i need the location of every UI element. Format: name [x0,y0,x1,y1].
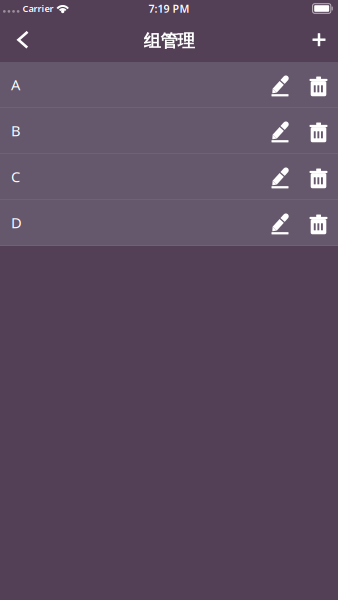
staticText: 7:19 PM [148,1,189,16]
button[interactable]: Delete group A [309,62,328,107]
button[interactable]: Add group [300,20,338,62]
staticText: Carrier [22,2,53,15]
button[interactable]: Delete group D [309,200,328,245]
button[interactable]: Delete group B [309,108,328,153]
staticText: A [11,75,20,94]
button[interactable]: Edit group A [270,62,291,107]
button[interactable]: Edit group C [270,154,291,199]
staticText: B [11,121,21,140]
button[interactable]: Edit group D [270,200,291,245]
button[interactable]: Edit group B [270,108,291,153]
staticText: 组管理 [143,30,194,52]
staticText: D [11,213,22,232]
button[interactable]: Back [0,20,46,62]
staticText: C [11,167,20,186]
button[interactable]: Delete group C [309,154,328,199]
